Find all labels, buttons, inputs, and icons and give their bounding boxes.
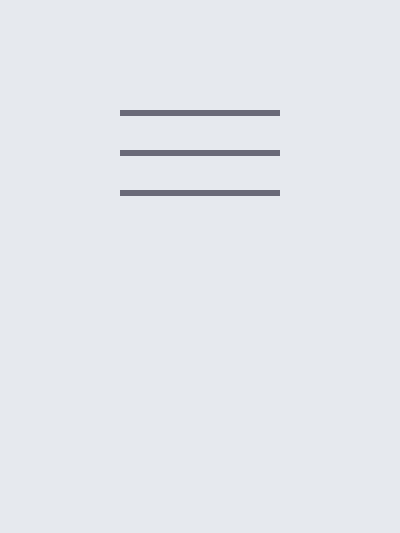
button[interactable]: Menu: [120, 110, 280, 196]
